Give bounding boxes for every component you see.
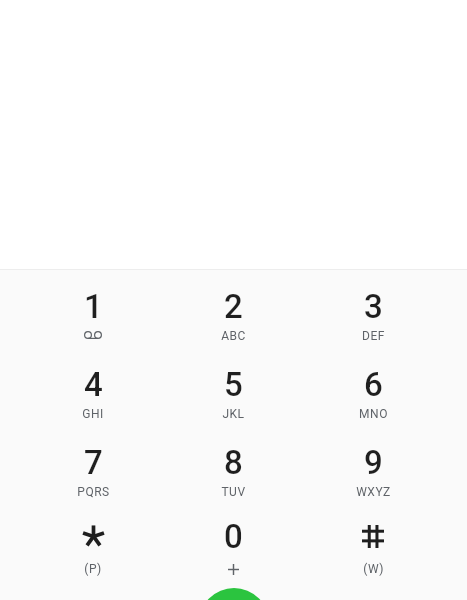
button[interactable]: Dial 6: [303, 343, 443, 421]
staticText: 1: [84, 287, 103, 326]
staticText: 0: [224, 517, 243, 556]
button[interactable]: Dial 8: [163, 421, 303, 499]
staticText: (P): [84, 562, 102, 576]
staticText: 5: [224, 365, 243, 404]
staticText: DEF: [362, 329, 385, 343]
staticText: GHI: [82, 407, 104, 421]
staticText: 8: [224, 443, 243, 482]
button[interactable]: Dial 2: [163, 265, 303, 343]
staticText: MNO: [359, 407, 388, 421]
staticText: WXYZ: [356, 485, 391, 499]
button[interactable]: Call: [199, 588, 269, 600]
staticText: 6: [364, 365, 383, 404]
button[interactable]: Dial #: [303, 499, 443, 577]
button[interactable]: Dial 3: [303, 265, 443, 343]
button[interactable]: Dial *: [23, 499, 163, 577]
staticText: (W): [363, 562, 384, 576]
staticText: TUV: [221, 485, 246, 499]
staticText: 7: [84, 443, 103, 482]
staticText: 3: [364, 287, 383, 326]
button[interactable]: Dial 5: [163, 343, 303, 421]
button[interactable]: Dial 1: [23, 265, 163, 343]
staticText: JKL: [222, 407, 245, 421]
button[interactable]: Dial 7: [23, 421, 163, 499]
button[interactable]: Dial 9: [303, 421, 443, 499]
staticText: ABC: [221, 329, 246, 343]
staticText: PQRS: [77, 485, 110, 499]
button[interactable]: Dial 0: [163, 499, 303, 577]
staticText: 2: [224, 287, 243, 326]
staticText: 9: [364, 443, 383, 482]
staticText: 4: [84, 365, 103, 404]
button[interactable]: Dial 4: [23, 343, 163, 421]
